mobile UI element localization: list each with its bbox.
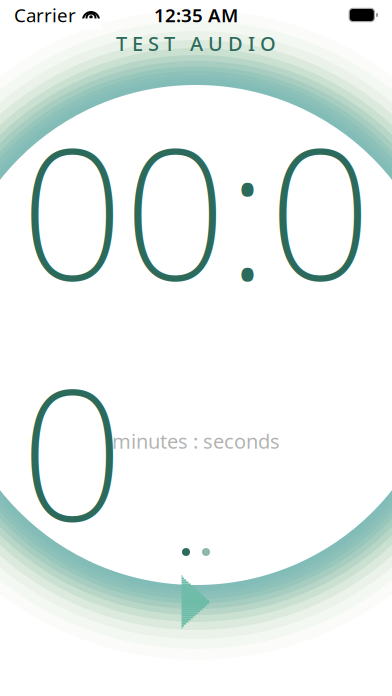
staticText: minutes : seconds xyxy=(112,428,280,454)
button[interactable]: T E S T A U D I O xyxy=(104,26,288,61)
staticText: 00:00 xyxy=(20,89,371,570)
staticText: T E S T A U D I O xyxy=(116,30,276,57)
staticText: Carrier xyxy=(14,3,76,27)
staticText: 12:35 AM xyxy=(154,3,238,27)
button[interactable]: Start timer xyxy=(163,565,228,639)
